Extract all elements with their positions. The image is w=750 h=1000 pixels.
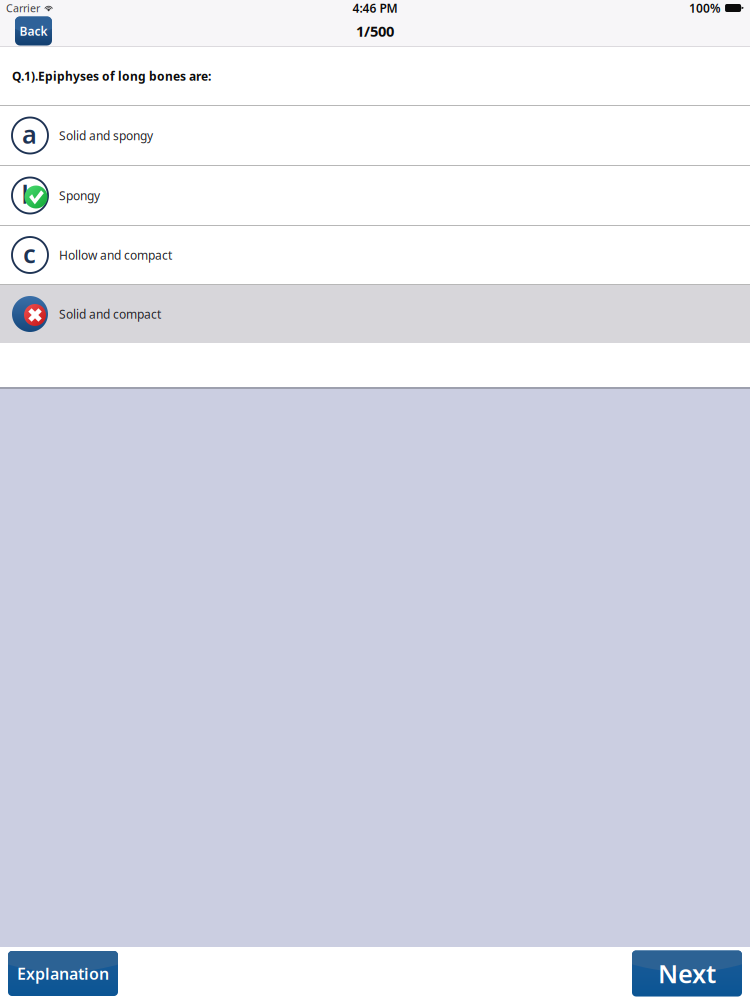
button[interactable]: Solid and compact bbox=[0, 285, 750, 343]
staticText: Solid and compact bbox=[59, 306, 161, 322]
button[interactable]: Explanation bbox=[8, 951, 118, 996]
button[interactable]: a bbox=[0, 106, 750, 165]
staticText: b bbox=[21, 177, 37, 211]
staticText: a bbox=[22, 117, 37, 151]
staticText: 4:46 PM bbox=[352, 0, 397, 16]
staticText: Explanation bbox=[17, 963, 109, 984]
staticText: Next bbox=[658, 957, 716, 990]
staticText: Solid and spongy bbox=[59, 127, 153, 143]
button[interactable]: Back bbox=[15, 16, 52, 45]
staticText: Back bbox=[19, 23, 47, 39]
button[interactable]: Next bbox=[632, 950, 742, 996]
staticText: Carrier bbox=[6, 1, 40, 15]
button[interactable]: c bbox=[0, 226, 750, 284]
button[interactable]: b bbox=[0, 166, 750, 225]
staticText: 1/500 bbox=[356, 21, 394, 41]
staticText: Q.1).Epiphyses of long bones are: bbox=[12, 68, 211, 84]
staticText: 100% bbox=[689, 0, 721, 16]
staticText: Hollow and compact bbox=[59, 247, 172, 263]
staticText: Spongy bbox=[59, 187, 100, 203]
staticText: c bbox=[23, 237, 36, 270]
